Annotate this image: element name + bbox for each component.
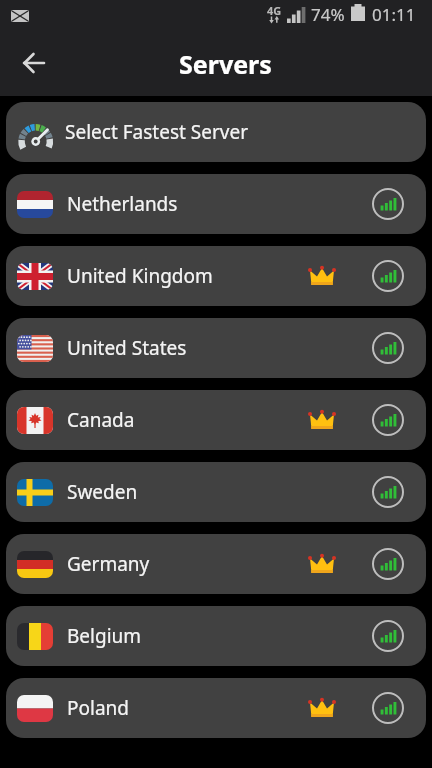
staticText: Poland bbox=[67, 695, 129, 721]
staticText: United States bbox=[67, 335, 187, 361]
staticText: Belgium bbox=[67, 623, 142, 649]
staticText: 01:11 bbox=[372, 3, 416, 26]
staticText: Netherlands bbox=[67, 191, 178, 217]
button[interactable]: Poland bbox=[6, 678, 426, 738]
button[interactable]: United Kingdom bbox=[6, 246, 426, 306]
button[interactable]: Netherlands bbox=[6, 174, 426, 234]
button[interactable]: Belgium bbox=[6, 606, 426, 666]
staticText: United Kingdom bbox=[67, 263, 213, 289]
staticText: 74% bbox=[311, 3, 345, 26]
staticText: Servers bbox=[179, 47, 272, 81]
staticText: Sweden bbox=[67, 479, 138, 505]
staticText: Select Fastest Server bbox=[65, 119, 248, 145]
staticText: Canada bbox=[67, 407, 135, 433]
button[interactable]: Germany bbox=[6, 534, 426, 594]
button[interactable]: United States bbox=[6, 318, 426, 378]
button[interactable]: Sweden bbox=[6, 462, 426, 522]
button[interactable]: Canada bbox=[6, 390, 426, 450]
button[interactable] bbox=[12, 41, 56, 85]
staticText: Germany bbox=[67, 551, 150, 577]
staticText: 4G bbox=[267, 3, 282, 18]
button[interactable]: Select Fastest Server bbox=[6, 102, 426, 162]
